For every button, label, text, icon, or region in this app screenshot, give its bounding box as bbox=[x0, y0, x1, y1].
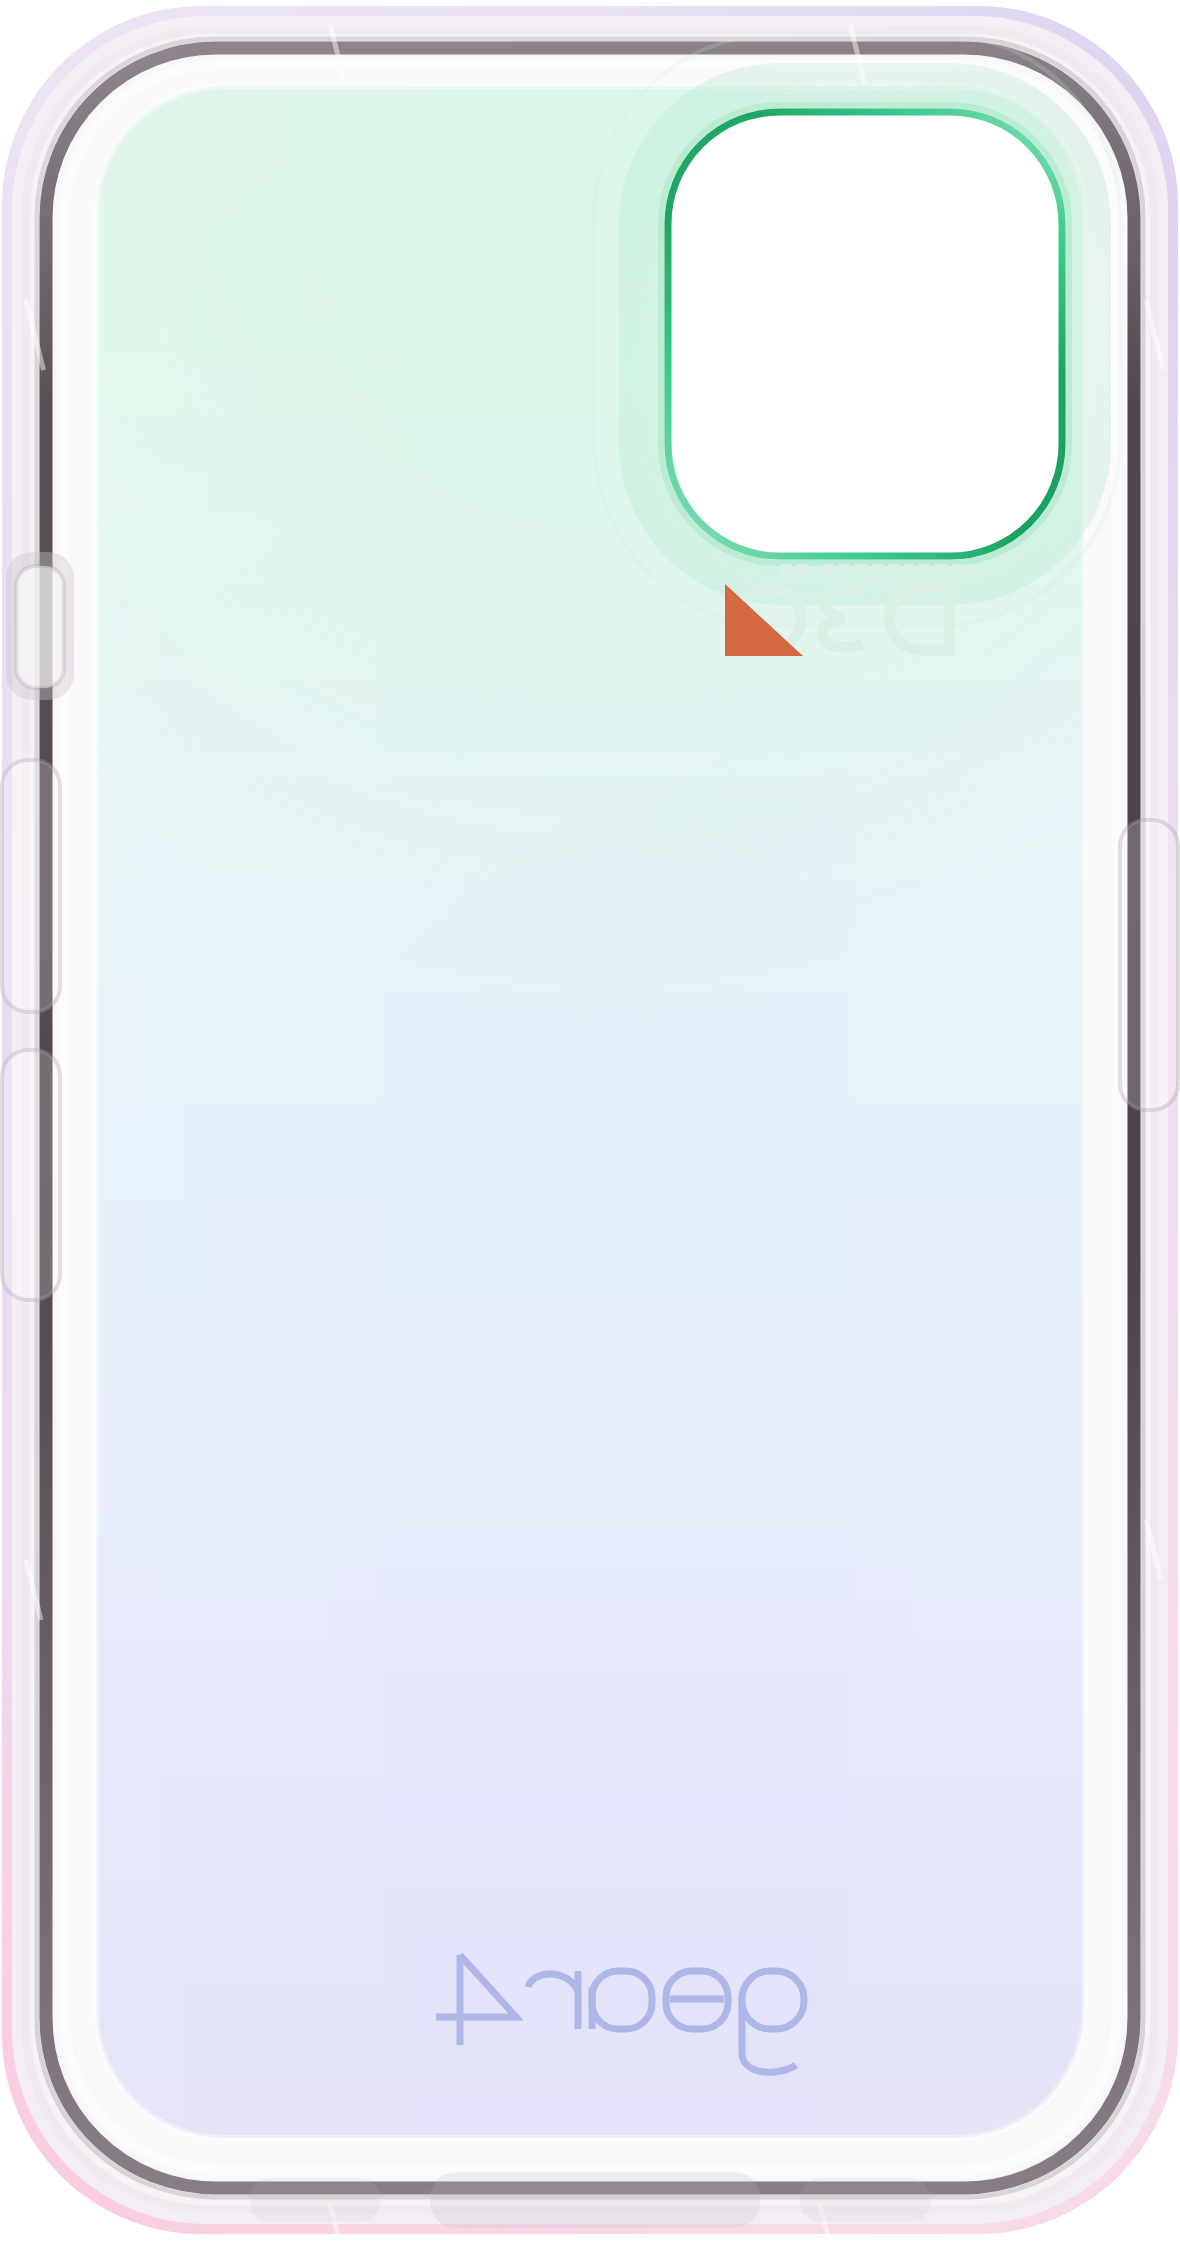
button[interactable]: Gear4 Crystal Palace iridescent phone ca… bbox=[0, 0, 1180, 2242]
